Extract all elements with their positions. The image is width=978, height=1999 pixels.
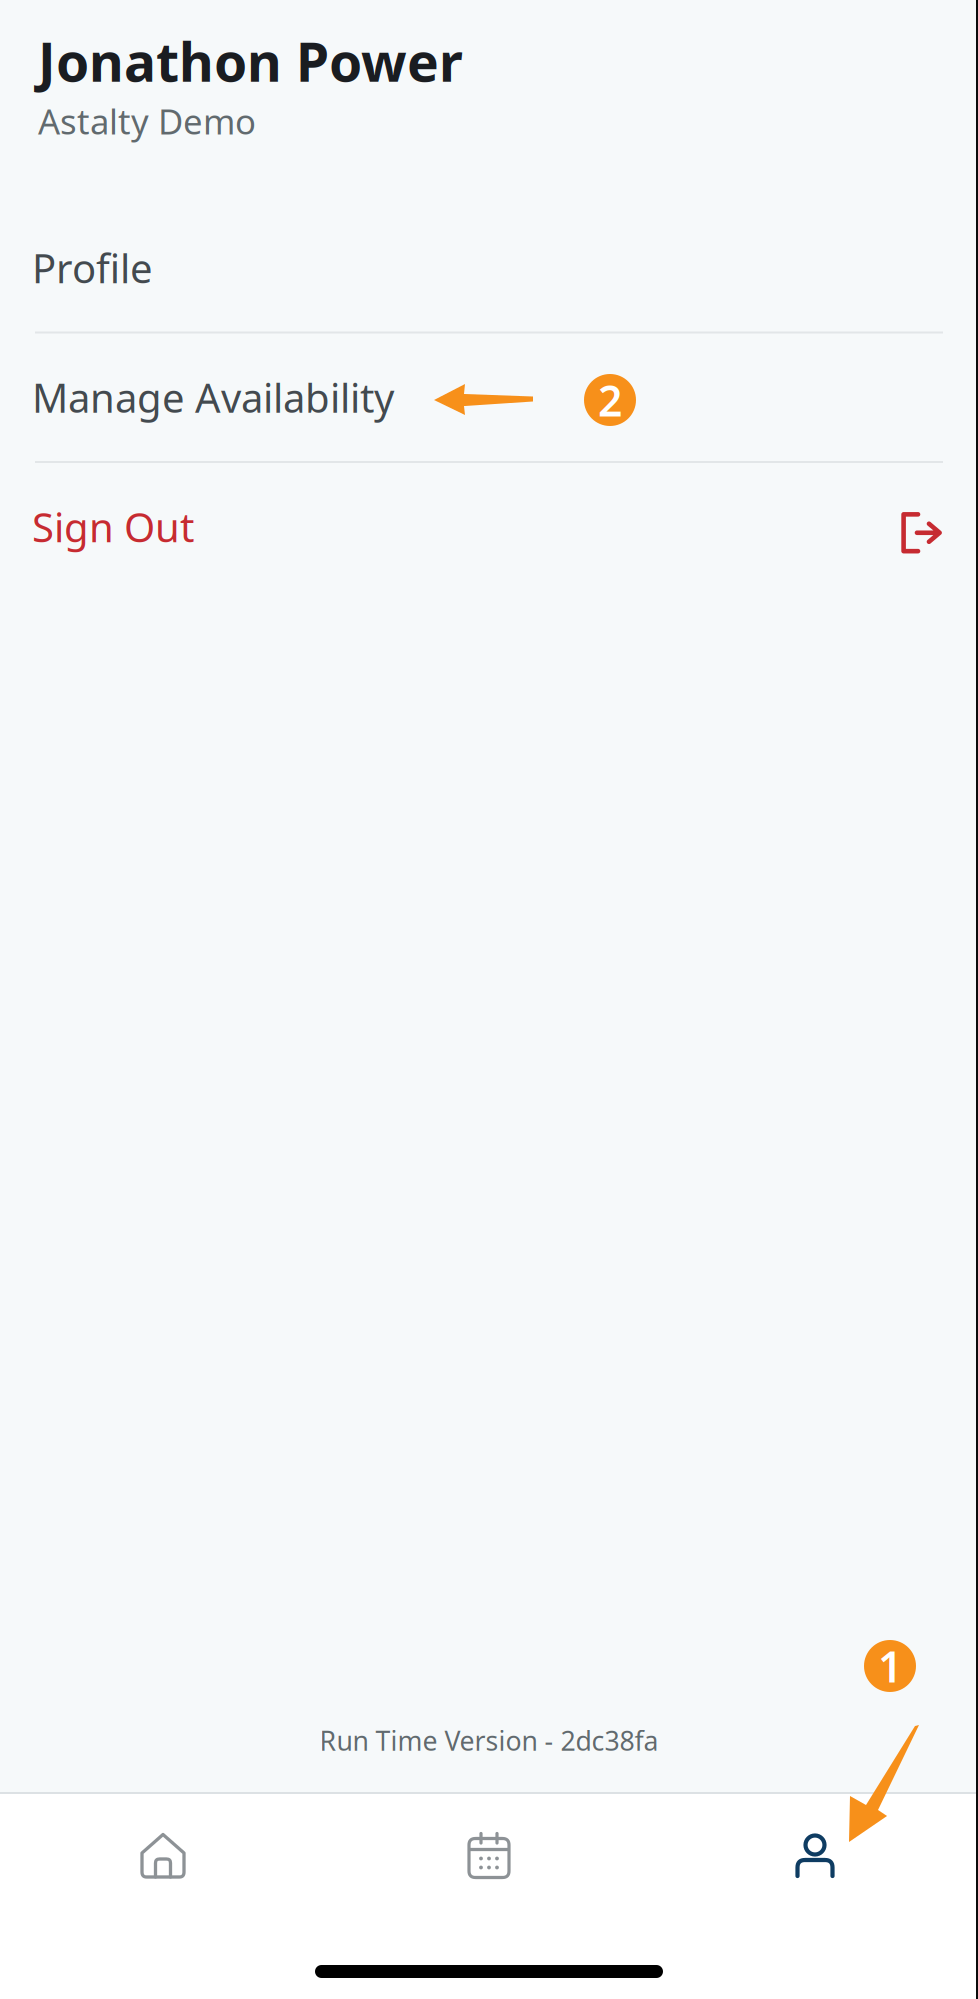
staticText: Run Time Version - 2dc38fa <box>319 1723 658 1758</box>
staticText: Profile <box>32 241 153 294</box>
button[interactable]: Profile <box>0 204 978 331</box>
staticText: Manage Availability <box>32 371 394 424</box>
button[interactable]: Home <box>0 1832 326 1880</box>
staticText: 1 <box>878 1638 902 1694</box>
staticText: Sign Out <box>32 500 194 553</box>
button[interactable]: Profile <box>652 1832 978 1880</box>
button[interactable]: Sign Out <box>0 463 978 590</box>
staticText: 2 <box>598 372 622 428</box>
staticText: Astalty Demo <box>38 98 256 144</box>
button[interactable]: Schedule <box>326 1831 652 1881</box>
staticText: Jonathon Power <box>38 26 463 96</box>
button[interactable]: Manage Availability <box>0 333 978 461</box>
